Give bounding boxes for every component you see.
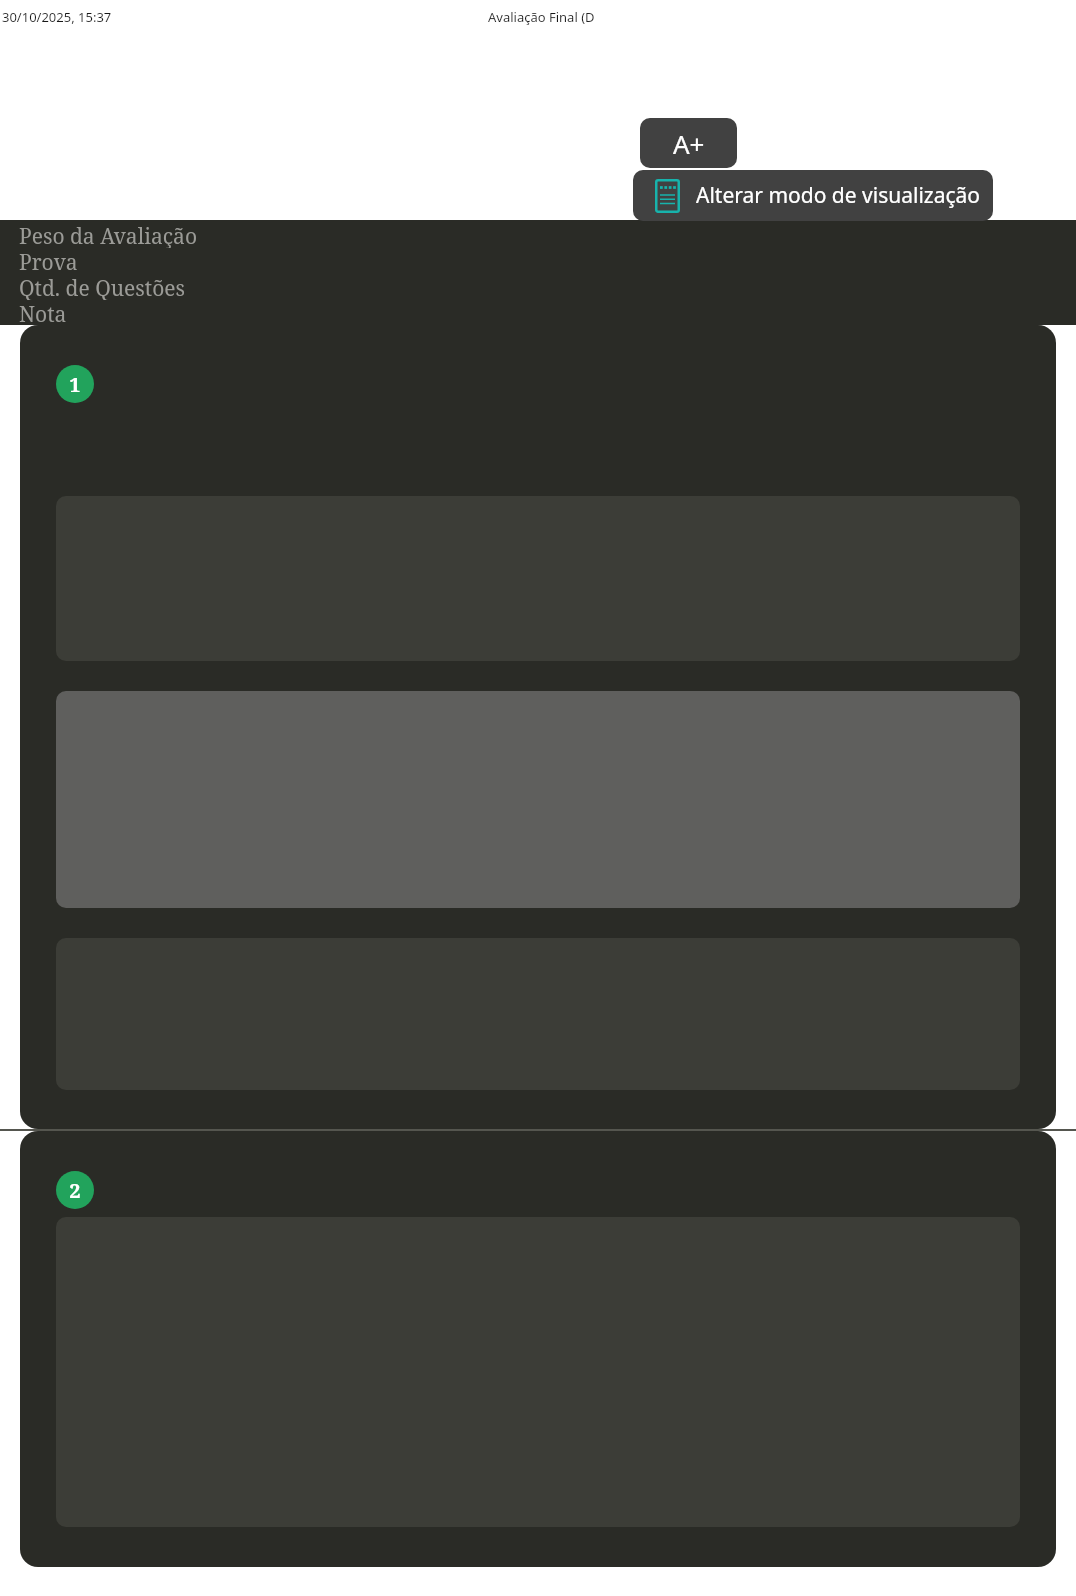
staticText: Alterar modo de visualização <box>696 181 981 210</box>
button[interactable]: Alterar modo de visualização <box>633 170 993 221</box>
staticText: Peso da Avaliação <box>19 222 197 248</box>
staticText: Prova <box>19 248 78 274</box>
staticText: 1 <box>69 371 81 398</box>
button[interactable]: Aumentar tamanho da fonte <box>640 118 737 168</box>
staticText: 30/10/2025, 15:37 <box>2 8 112 26</box>
staticText: Avaliação Final (D <box>488 8 595 26</box>
staticText: A+ <box>673 126 705 161</box>
button[interactable]: 2 <box>20 1131 1056 1567</box>
button[interactable]: 1 <box>20 325 1056 1129</box>
staticText: Nota <box>19 300 67 325</box>
staticText: Qtd. de Questões <box>19 274 186 300</box>
staticText: 2 <box>69 1177 81 1204</box>
